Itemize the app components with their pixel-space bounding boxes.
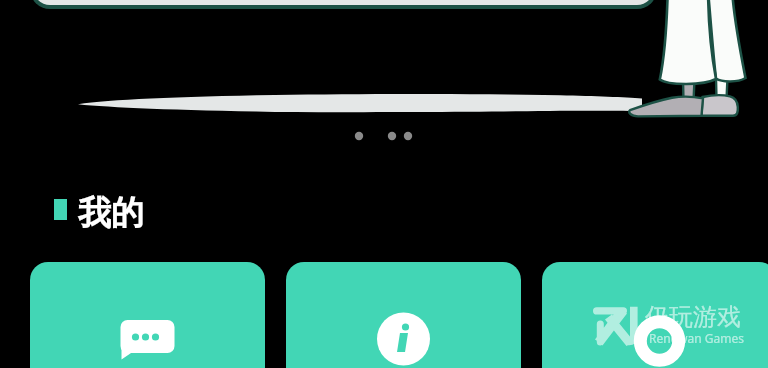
- staticText: 仍玩游戏: [645, 302, 741, 332]
- button[interactable]: Feedback: [30, 262, 265, 368]
- button[interactable]: [30, 0, 657, 9]
- staticText: Rengwan Games: [649, 330, 744, 346]
- button[interactable]: Settings: [542, 262, 768, 368]
- button[interactable]: About: [286, 262, 521, 368]
- staticText: 我的: [78, 192, 144, 234]
